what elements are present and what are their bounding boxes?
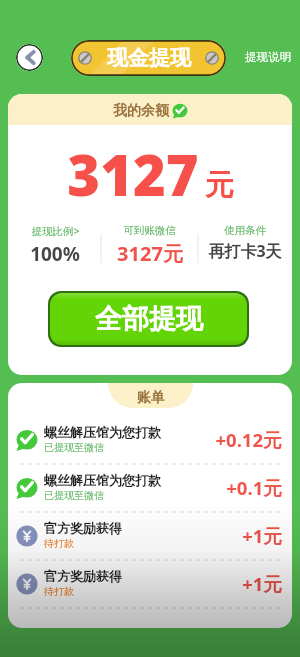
staticText: 100% (30, 241, 80, 267)
staticText: 螺丝解压馆为您打款 (44, 472, 161, 488)
staticText: 官方奖励获得 (44, 568, 122, 584)
staticText: 3127 (67, 136, 199, 212)
staticText: 使用条件 (224, 224, 266, 237)
staticText: 可到账微信 (123, 224, 176, 237)
staticText: +0.1元 (226, 475, 282, 500)
staticText: 提现说明 (245, 50, 291, 64)
staticText: 全部提现 (95, 302, 203, 336)
staticText: 已提现至微信 (44, 489, 104, 502)
button[interactable]: 螺丝解压馆为您打款 (8, 417, 292, 465)
staticText: +1元 (242, 523, 282, 548)
staticText: 官方奖励获得 (44, 520, 122, 536)
staticText: 元 (205, 167, 234, 204)
button[interactable]: Back (16, 44, 43, 71)
button[interactable]: 螺丝解压馆为您打款 (8, 465, 292, 513)
staticText: 已提现至微信 (44, 441, 104, 454)
button[interactable]: 提现说明 (245, 50, 291, 64)
staticText: +0.12元 (215, 427, 282, 452)
staticText: 待打款 (44, 585, 74, 598)
staticText: +1元 (242, 571, 282, 596)
staticText: 账单 (137, 389, 165, 407)
staticText: 我的余额 (113, 102, 169, 120)
staticText: 提现比例> (31, 224, 80, 238)
staticText: 螺丝解压馆为您打款 (44, 424, 161, 440)
staticText: 现金提现 (107, 45, 191, 71)
button[interactable]: 官方奖励获得 (8, 561, 292, 609)
staticText: 3127元 (117, 240, 183, 267)
button[interactable]: 官方奖励获得 (8, 513, 292, 561)
staticText: 再打卡3天 (208, 240, 282, 262)
staticText: 待打款 (44, 537, 74, 550)
button[interactable]: 现金提现 (71, 40, 226, 76)
button[interactable]: 全部提现 (50, 293, 247, 345)
